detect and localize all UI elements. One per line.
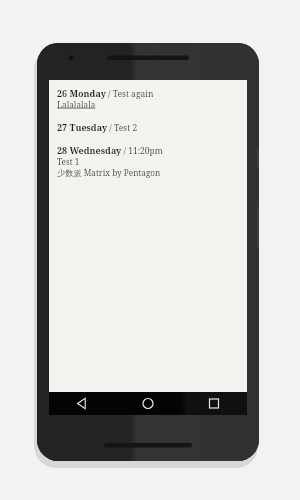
button[interactable]: Back <box>49 392 115 415</box>
staticText: 26 Monday / Test again <box>57 87 154 99</box>
staticText: Test 1 <box>57 156 80 167</box>
button[interactable]: Zoom level <box>191 395 221 403</box>
button[interactable]: Home <box>115 392 181 415</box>
staticText: 少数派 Matrix by Pentagon <box>57 167 161 178</box>
button[interactable]: 28 Wednesday / 11:20pm <box>57 144 239 178</box>
staticText: 27 Tuesday / Test 2 <box>57 121 138 133</box>
button[interactable]: Recent apps <box>181 392 247 415</box>
staticText: 28 Wednesday / 11:20pm <box>57 144 163 156</box>
button[interactable]: DECEMBER <box>55 394 124 404</box>
staticText: DECEMBER <box>59 394 95 404</box>
button[interactable]: Add entry <box>147 391 163 407</box>
button[interactable]: 27 Tuesday / Test 2 <box>57 121 239 133</box>
staticText: Lalalalala <box>57 99 96 110</box>
button[interactable]: 26 Monday / Test again <box>57 87 239 110</box>
